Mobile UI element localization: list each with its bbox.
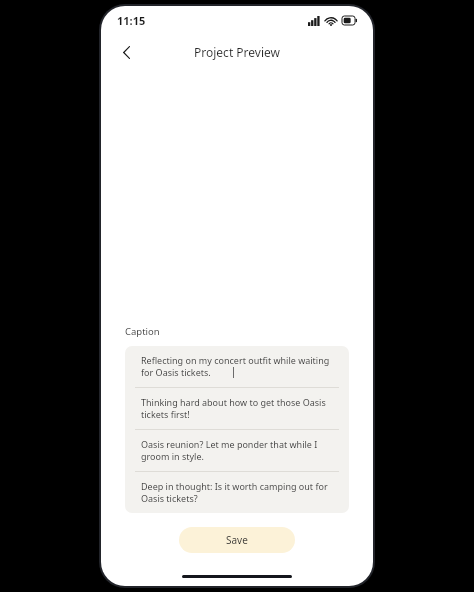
button[interactable]: Back	[113, 39, 139, 65]
button[interactable]: Save	[179, 527, 295, 553]
staticText: Thinking hard about how to get those Oas…	[141, 396, 339, 421]
staticText: Deep in thought: Is it worth camping out…	[141, 480, 339, 505]
button[interactable]: Thinking hard about how to get those Oas…	[125, 388, 349, 429]
staticText: Oasis reunion? Let me ponder that while …	[141, 438, 339, 463]
staticText: Reflecting on my concert outfit while wa…	[141, 354, 339, 379]
staticText: Save	[226, 533, 248, 547]
staticText: 11:15	[117, 13, 146, 28]
staticText: Project Preview	[194, 44, 280, 60]
button[interactable]: Oasis reunion? Let me ponder that while …	[125, 430, 349, 471]
staticText: Caption	[125, 325, 160, 338]
button[interactable]: Deep in thought: Is it worth camping out…	[125, 472, 349, 513]
button[interactable]: Reflecting on my concert outfit while wa…	[125, 346, 349, 387]
